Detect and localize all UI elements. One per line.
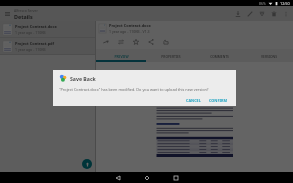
staticText: Project Contract.docx [109, 23, 151, 28]
button[interactable]: Open with [98, 35, 113, 49]
button[interactable]: CANCEL [183, 97, 204, 104]
staticText: COMMENTS [210, 54, 229, 58]
button[interactable]: Navigation menu [0, 6, 14, 21]
staticText: VERSIONS [261, 54, 277, 58]
button[interactable]: Home [132, 172, 161, 183]
button[interactable]: Edit [244, 6, 256, 21]
staticText: PREVIEW [114, 54, 129, 58]
button[interactable]: Share [143, 35, 158, 49]
button[interactable]: PROPERTIES [146, 49, 195, 62]
button[interactable]: VERSIONS [244, 49, 293, 62]
button[interactable]: PREVIEW [96, 49, 146, 62]
staticText: 12:50 [280, 1, 290, 6]
staticText: Project Contract.pdf [15, 41, 55, 46]
staticText: CONFIRM [209, 98, 228, 103]
button[interactable]: Sync [113, 35, 128, 49]
staticText: PROPERTIES [161, 54, 181, 58]
staticText: Details [14, 13, 33, 20]
button[interactable]: Download [232, 6, 244, 21]
staticText: Project Contract.docx [15, 24, 57, 29]
button[interactable]: Recent apps [161, 172, 190, 183]
button[interactable]: Project Contract.docx [0, 21, 95, 37]
button[interactable]: Project Contract.pdf [0, 38, 95, 54]
button[interactable]: Favourite [128, 35, 143, 49]
button[interactable]: Upload [256, 6, 268, 21]
staticText: Alfresco Server [14, 8, 38, 13]
button[interactable]: Add [82, 159, 92, 169]
staticText: "Project Contract.docx" has been modifie… [59, 87, 209, 92]
staticText: 1 year ago - 110KB - V1.3 [109, 29, 150, 34]
button[interactable]: Like [158, 35, 173, 49]
staticText: Save Back [70, 75, 96, 82]
staticText: 86% [259, 1, 266, 6]
button[interactable]: Delete [268, 6, 280, 21]
staticText: 1 year ago - 110KB [15, 30, 46, 35]
button[interactable]: COMMENTS [195, 49, 244, 62]
button[interactable]: CONFIRM [206, 97, 231, 104]
button[interactable]: Back [103, 172, 132, 183]
staticText: 1 year ago - 110KB [15, 47, 46, 52]
staticText: CANCEL [186, 98, 201, 103]
